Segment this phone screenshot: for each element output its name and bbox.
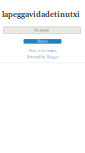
staticText: lapeggavidadetinutxi	[2, 10, 80, 19]
button[interactable]: Blogger	[46, 55, 58, 59]
staticText: Powered by	[26, 55, 45, 59]
staticText: View web version	[28, 49, 56, 53]
button[interactable]: Home	[23, 39, 61, 44]
staticText: No posts.	[34, 28, 50, 33]
button[interactable]: View web version	[28, 49, 56, 53]
staticText: Blogger	[46, 55, 58, 59]
staticText: Home	[37, 39, 48, 44]
